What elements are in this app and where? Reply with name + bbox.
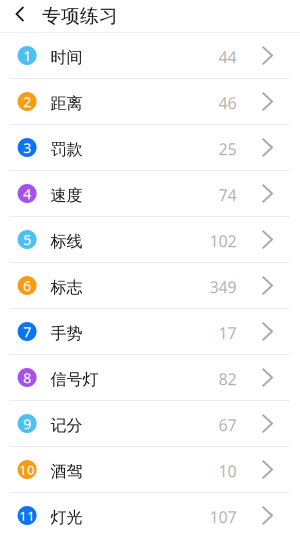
staticText: 速度 <box>51 186 83 205</box>
button[interactable]: 7 <box>0 309 300 355</box>
button[interactable]: 10 <box>0 447 300 493</box>
button[interactable]: 9 <box>0 401 300 447</box>
staticText: 5 <box>23 230 31 249</box>
staticText: 9 <box>23 414 31 433</box>
button[interactable]: 5 <box>0 217 300 263</box>
staticText: 灯光 <box>51 508 83 527</box>
staticText: 82 <box>219 368 237 390</box>
staticText: 记分 <box>51 416 83 435</box>
button[interactable]: 6 <box>0 263 300 309</box>
staticText: 46 <box>219 92 237 114</box>
button[interactable]: 8 <box>0 355 300 401</box>
staticText: 标线 <box>51 232 83 251</box>
button[interactable]: Back <box>0 0 42 32</box>
staticText: 74 <box>219 184 237 206</box>
staticText: 7 <box>23 322 31 341</box>
staticText: 2 <box>23 92 31 111</box>
button[interactable]: 11 <box>0 493 300 534</box>
staticText: 信号灯 <box>51 370 99 389</box>
button[interactable]: 2 <box>0 79 300 125</box>
staticText: 349 <box>210 276 237 298</box>
staticText: 手势 <box>51 324 83 343</box>
staticText: 1 <box>23 46 31 65</box>
staticText: 3 <box>23 138 31 157</box>
button[interactable]: 1 <box>0 33 300 79</box>
staticText: 44 <box>219 46 237 68</box>
staticText: 67 <box>219 414 237 436</box>
staticText: 25 <box>219 138 237 160</box>
staticText: 6 <box>23 276 31 295</box>
staticText: 17 <box>219 322 237 344</box>
staticText: 标志 <box>51 278 83 297</box>
staticText: 10 <box>219 460 237 482</box>
staticText: 距离 <box>51 94 83 113</box>
staticText: 102 <box>210 230 237 252</box>
staticText: 时间 <box>51 48 83 67</box>
staticText: 11 <box>19 507 35 524</box>
staticText: 107 <box>210 506 237 528</box>
staticText: 酒驾 <box>51 462 83 481</box>
staticText: 罚款 <box>51 140 83 159</box>
staticText: 4 <box>23 184 31 203</box>
staticText: 专项练习 <box>42 4 118 27</box>
button[interactable]: 3 <box>0 125 300 171</box>
button[interactable]: 4 <box>0 171 300 217</box>
staticText: 10 <box>19 461 35 478</box>
staticText: 8 <box>23 368 31 387</box>
